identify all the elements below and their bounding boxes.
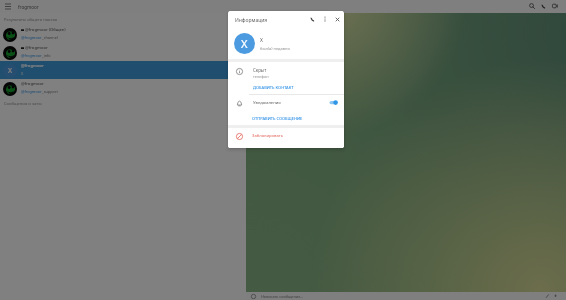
button[interactable]: Emoji (249, 292, 257, 300)
button[interactable]: Написать сообщение... (261, 293, 331, 299)
staticText: Написать сообщение... (261, 294, 304, 299)
staticText: @frogmoor (21, 35, 42, 40)
button[interactable]: Video call (550, 1, 560, 11)
staticText: телефон (253, 74, 269, 79)
button[interactable]: Attach file (543, 292, 551, 300)
staticText: _info (42, 53, 51, 58)
button[interactable] (228, 111, 344, 122)
button[interactable]: @frogmoor (0, 79, 246, 97)
staticText: ОТПРАВИТЬ СООБЩЕНИЕ (252, 116, 303, 121)
staticText: Скрыт (253, 67, 267, 73)
staticText: frogmoor (18, 4, 39, 10)
staticText: _channel (42, 35, 58, 40)
staticText: @frogmoor (21, 81, 44, 87)
staticText: X (241, 36, 248, 51)
button[interactable]: Profile photo (234, 33, 255, 54)
button[interactable]: X (0, 61, 246, 79)
staticText: Информация (235, 17, 268, 24)
button[interactable]: Notifications toggle (329, 99, 338, 107)
button[interactable]: Close (332, 14, 342, 24)
button[interactable]: Voice message (551, 292, 559, 300)
button[interactable]: @frogmoor (Общее) (0, 25, 246, 43)
staticText: был(а) недавно (260, 46, 290, 51)
staticText: @frogmoor (21, 53, 42, 58)
staticText: Уведомления (253, 100, 281, 106)
button[interactable] (228, 128, 344, 144)
button[interactable] (228, 95, 344, 110)
button[interactable]: Search (527, 1, 537, 11)
button[interactable] (228, 62, 344, 80)
button[interactable]: @frogmoor (0, 43, 246, 61)
staticText: Заблокировать (252, 133, 283, 139)
button[interactable]: Call (538, 1, 548, 11)
button[interactable]: Call (307, 14, 317, 24)
button[interactable]: frogmoor (14, 1, 114, 12)
staticText: @frogmoor (21, 89, 42, 94)
button[interactable]: Menu (2, 1, 13, 12)
staticText: @frogmoor (Общее) (25, 27, 66, 33)
staticText: _support (42, 89, 58, 94)
button[interactable]: More options (320, 14, 330, 24)
staticText: Сообщения и чаты (4, 101, 42, 107)
staticText: ДОБАВИТЬ КОНТАКТ (253, 85, 294, 90)
staticText: X (260, 37, 263, 44)
staticText: X (8, 66, 13, 76)
staticText: @frogmoor (25, 45, 48, 51)
staticText: Результаты общего поиска (4, 17, 58, 23)
staticText: @frogmoor (21, 63, 44, 69)
button[interactable] (228, 81, 344, 92)
staticText: X (21, 71, 24, 76)
